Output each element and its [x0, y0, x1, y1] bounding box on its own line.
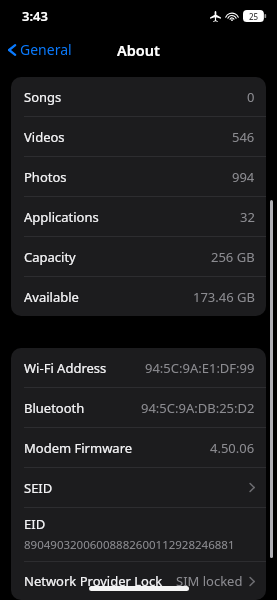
button[interactable]: Network Provider Lock — [11, 562, 266, 600]
staticText: 32 — [240, 208, 255, 226]
button[interactable]: EID — [11, 508, 266, 562]
staticText: 994 — [232, 168, 255, 186]
staticText: Capacity — [24, 248, 76, 266]
staticText: Photos — [24, 168, 67, 186]
staticText: 89049032006008882600112928246881 — [24, 537, 235, 553]
staticText: 3:43 — [22, 7, 48, 25]
staticText: 256 GB — [211, 248, 255, 266]
button[interactable]: Back to General — [0, 35, 80, 64]
button[interactable]: Wi-Fi Address — [11, 348, 266, 388]
staticText: About — [117, 40, 160, 60]
button[interactable]: Videos — [11, 117, 266, 157]
button[interactable]: Applications — [11, 197, 266, 237]
button[interactable]: SEID — [11, 468, 266, 508]
staticText: SIM locked — [176, 572, 243, 590]
staticText: 94:5C:9A:E1:DF:99 — [145, 359, 255, 377]
staticText: 25 — [249, 11, 259, 22]
staticText: 4.50.06 — [210, 439, 255, 457]
staticText: 94:5C:9A:DB:25:D2 — [141, 399, 255, 417]
staticText: Videos — [24, 128, 65, 146]
staticText: EID — [24, 515, 46, 533]
button[interactable]: Available — [11, 277, 266, 316]
staticText: Wi-Fi Address — [24, 359, 107, 377]
button[interactable]: Bluetooth — [11, 388, 266, 428]
staticText: 173.46 GB — [193, 288, 255, 306]
staticText: Network Provider Lock — [24, 572, 163, 590]
button[interactable]: Songs — [11, 77, 266, 117]
staticText: Applications — [24, 208, 99, 226]
staticText: Bluetooth — [24, 399, 85, 417]
staticText: 0 — [247, 88, 255, 106]
button[interactable]: Photos — [11, 157, 266, 197]
button[interactable]: Modem Firmware — [11, 428, 266, 468]
staticText: Songs — [24, 88, 62, 106]
staticText: 546 — [232, 128, 255, 146]
button[interactable]: Capacity — [11, 237, 266, 277]
staticText: Modem Firmware — [24, 439, 133, 457]
staticText: Available — [24, 288, 79, 306]
staticText: SEID — [24, 479, 53, 497]
staticText: General — [20, 40, 72, 59]
